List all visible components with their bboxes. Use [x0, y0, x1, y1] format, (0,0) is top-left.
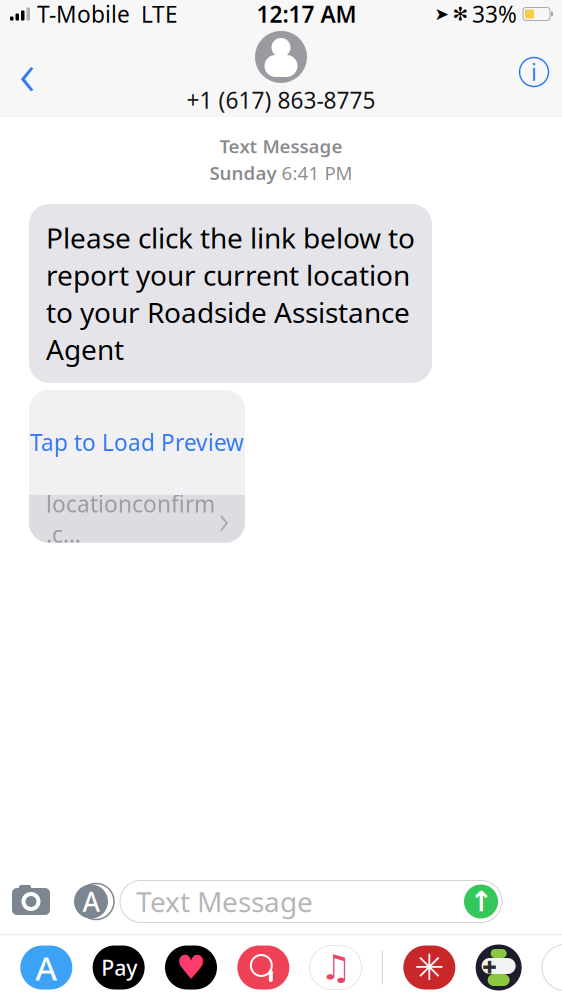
staticText: Please click the link below to report yo…	[46, 219, 415, 368]
staticText: ♫	[320, 948, 351, 987]
staticText: T-Mobile	[37, 0, 130, 29]
button[interactable]: iMessage app	[476, 944, 522, 990]
staticText: ✳	[414, 947, 444, 988]
button[interactable]: iMessage app	[237, 945, 289, 989]
button[interactable]: iMessage app	[310, 945, 362, 989]
staticText: ↑	[469, 886, 492, 917]
button[interactable]: Tap to Load Preview	[29, 390, 245, 495]
button[interactable]: Camera	[0, 870, 62, 932]
staticText: +1 (617) 863-8775	[186, 85, 375, 115]
button[interactable]: Details	[506, 42, 562, 102]
button[interactable]: iMessage app	[403, 945, 455, 989]
button[interactable]: App Store	[62, 870, 120, 932]
button[interactable]: iMessage app	[93, 945, 145, 989]
staticText: Tap to Load Preview	[30, 427, 244, 457]
staticText: 6:41 PM	[281, 160, 352, 185]
staticText: ✚	[482, 958, 497, 977]
staticText: LTE	[141, 0, 178, 29]
staticText: ✻	[452, 3, 468, 25]
staticText: Pay	[101, 953, 137, 982]
button[interactable]: Back	[0, 42, 54, 102]
staticText: Text Message	[136, 883, 313, 920]
staticText: i	[531, 57, 537, 87]
staticText: A	[35, 945, 57, 990]
staticText: 12:17 AM	[256, 0, 356, 29]
staticText: ➤	[434, 4, 449, 24]
staticText: ♥	[176, 949, 206, 986]
button[interactable]: iMessage app	[20, 945, 72, 990]
button[interactable]: Text Message field	[120, 880, 502, 922]
staticText: ‹	[19, 31, 35, 113]
button[interactable]: Contact	[255, 31, 307, 83]
button[interactable]: locationconfirm.c…	[29, 495, 245, 543]
staticText: Sunday	[209, 160, 276, 185]
button[interactable]: iMessage app	[165, 945, 217, 989]
staticText: A	[82, 884, 99, 919]
staticText: locationconfirm.c…	[46, 489, 215, 549]
staticText: Text Message	[219, 133, 342, 158]
staticText: 33%	[472, 0, 517, 29]
staticText: ›	[219, 493, 229, 544]
